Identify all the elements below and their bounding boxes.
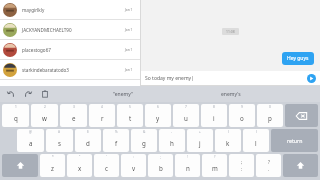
staticText: j (199, 139, 201, 147)
staticText: return (287, 137, 303, 144)
button[interactable]: * (40, 154, 65, 177)
button[interactable]: ? (256, 154, 281, 177)
staticText: 2 (44, 105, 46, 109)
button[interactable]: + (187, 129, 213, 152)
button[interactable]: ( (215, 129, 241, 152)
button[interactable]: 3 (60, 104, 87, 127)
staticText: ) (256, 130, 257, 134)
staticText: ! (187, 155, 188, 159)
staticText: 0 (269, 105, 271, 109)
staticText: # (58, 130, 61, 134)
button[interactable]: 2 (31, 104, 58, 127)
staticText: r (101, 114, 104, 122)
button[interactable]: 7 (173, 104, 199, 127)
staticText: h (170, 139, 174, 147)
staticText: : (133, 155, 134, 159)
staticText: v (132, 164, 136, 172)
staticText: ? (214, 155, 216, 159)
staticText: o (240, 114, 244, 122)
staticText: Hey guys (287, 55, 309, 62)
staticText: d (86, 139, 90, 147)
staticText: 4 (101, 105, 103, 109)
button[interactable]: # (46, 129, 73, 152)
staticText: f (115, 139, 118, 147)
staticText: w (42, 114, 47, 122)
button[interactable]: So today my enemy| (141, 71, 320, 85)
staticText: JACKYANDMICHAELT90 (22, 27, 125, 33)
staticText: g (142, 139, 146, 147)
staticText: b (159, 164, 163, 172)
staticText: $ (87, 130, 89, 134)
button[interactable]: ) (243, 129, 269, 152)
staticText: 9 (241, 105, 243, 109)
staticText: So today my enemy| (145, 75, 305, 82)
staticText: t (129, 114, 132, 122)
button[interactable]: - (159, 129, 185, 152)
staticText: ; (160, 155, 161, 159)
staticText: p (268, 114, 272, 122)
button[interactable]: 5 (117, 104, 143, 127)
button[interactable]: & (131, 129, 157, 152)
button[interactable]: JACKYANDMICHAELT90 (0, 20, 140, 39)
staticText: + (199, 130, 201, 134)
button[interactable]: 6 (145, 104, 171, 127)
staticText: " (79, 155, 81, 159)
staticText: a (29, 139, 33, 147)
button[interactable]: Shift (283, 154, 318, 177)
button[interactable]: Hey guys (282, 52, 314, 65)
button[interactable]: "enemy" (88, 91, 158, 98)
staticText: s (58, 139, 61, 147)
staticText: 11:08 (226, 29, 235, 34)
button[interactable]: 4 (89, 104, 115, 127)
staticText: enemy's (221, 91, 241, 98)
staticText: 3 (73, 105, 75, 109)
button[interactable]: 8 (201, 104, 227, 127)
button[interactable]: ; (229, 154, 254, 177)
button[interactable]: % (103, 129, 129, 152)
button[interactable]: " (67, 154, 92, 177)
button[interactable]: ? (202, 154, 227, 177)
staticText: Jan 1 (125, 28, 133, 32)
button[interactable]: Send (305, 72, 317, 84)
button[interactable]: 0 (257, 104, 283, 127)
button[interactable]: starkindebaratatodo3 (0, 60, 140, 79)
staticText: l (255, 139, 257, 147)
staticText: "enemy" (113, 91, 133, 98)
staticText: y (156, 114, 160, 122)
button[interactable]: @ (17, 129, 44, 152)
button[interactable]: Clipboard (40, 89, 50, 99)
button[interactable]: ' (94, 154, 119, 177)
button[interactable]: Shift (2, 154, 38, 177)
button[interactable]: Undo (6, 89, 16, 99)
staticText: i (213, 114, 215, 122)
button[interactable]: Backspace (285, 104, 318, 127)
staticText: starkindebaratatodo3 (22, 67, 125, 73)
staticText: ' (106, 155, 107, 159)
staticText: ( (228, 130, 229, 134)
staticText: q (14, 114, 18, 122)
button[interactable]: enemy's (196, 91, 266, 98)
button[interactable]: Redo (23, 89, 33, 99)
staticText: maygirlkly (22, 7, 125, 13)
staticText: k (226, 139, 230, 147)
staticText: x (78, 164, 82, 172)
staticText: 5 (129, 105, 131, 109)
staticText: c (105, 164, 108, 172)
staticText: Jan 1 (125, 68, 133, 72)
staticText: 1 (15, 105, 17, 109)
staticText: placestogo67 (22, 47, 125, 53)
button[interactable]: return (271, 129, 318, 152)
staticText: * (52, 155, 54, 159)
button[interactable]: ; (148, 154, 173, 177)
button[interactable]: : (121, 154, 146, 177)
staticText: @ (29, 130, 32, 134)
button[interactable]: placestogo67 (0, 40, 140, 59)
button[interactable]: maygirlkly (0, 0, 140, 19)
staticText: - (171, 130, 173, 134)
staticText: e (72, 114, 76, 122)
button[interactable]: ! (175, 154, 200, 177)
button[interactable]: 9 (229, 104, 255, 127)
staticText: ? (268, 159, 270, 165)
button[interactable]: 1 (2, 104, 29, 127)
button[interactable]: $ (75, 129, 101, 152)
